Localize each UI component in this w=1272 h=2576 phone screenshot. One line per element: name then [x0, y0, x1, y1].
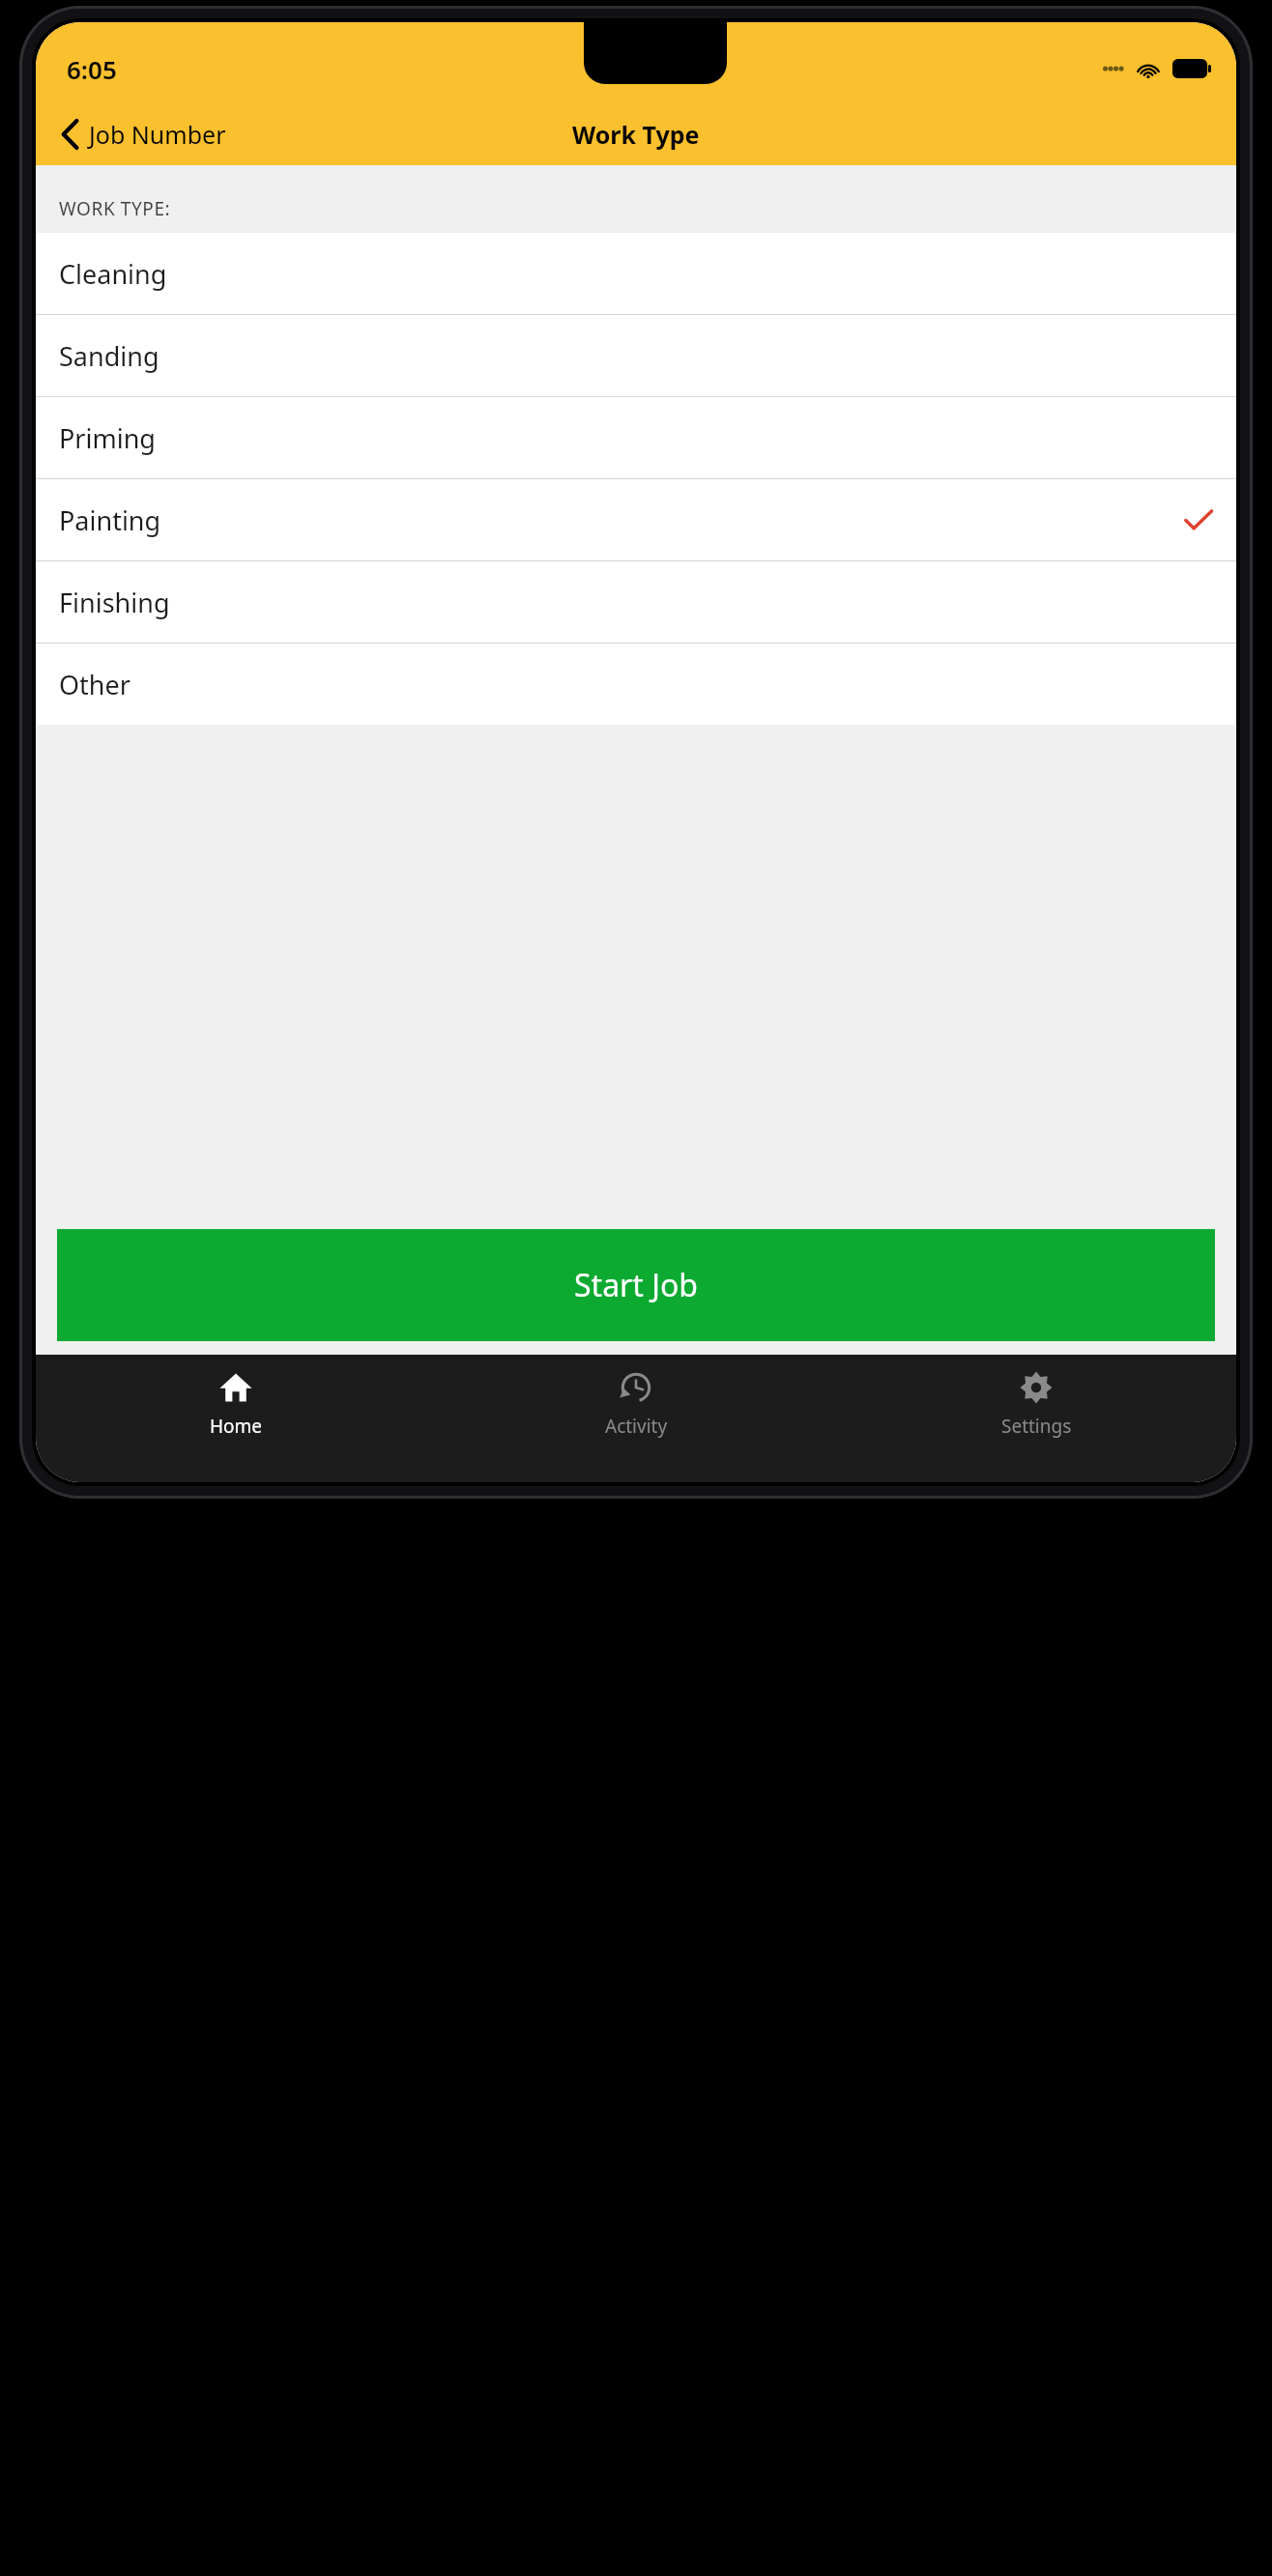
- staticText: Other: [59, 667, 130, 702]
- staticText: Start Job: [574, 1264, 698, 1306]
- button[interactable]: Settings: [836, 1355, 1236, 1482]
- button[interactable]: Activity: [436, 1355, 836, 1482]
- staticText: Sanding: [59, 338, 159, 374]
- button[interactable]: Start Job: [57, 1229, 1215, 1341]
- staticText: Cleaning: [59, 256, 167, 292]
- staticText: Work Type: [572, 118, 700, 151]
- other: Back: [61, 119, 80, 150]
- staticText: Activity: [605, 1414, 668, 1439]
- button[interactable]: Other: [36, 644, 1236, 725]
- button[interactable]: Home: [36, 1355, 436, 1482]
- button[interactable]: Priming: [36, 397, 1236, 478]
- button[interactable]: Cleaning: [36, 233, 1236, 314]
- staticText: Settings: [1001, 1414, 1072, 1439]
- button[interactable]: Back: [57, 112, 230, 157]
- staticText: Priming: [59, 420, 156, 456]
- button[interactable]: Painting: [36, 479, 1236, 560]
- button[interactable]: Sanding: [36, 315, 1236, 396]
- staticText: Finishing: [59, 585, 170, 620]
- staticText: Home: [210, 1414, 263, 1439]
- other: Activity: [619, 1370, 653, 1405]
- staticText: Painting: [59, 502, 161, 538]
- other: Home: [218, 1370, 253, 1405]
- other: Settings: [1019, 1370, 1054, 1405]
- staticText: 6:05: [67, 52, 117, 86]
- staticText: WORK TYPE:: [59, 196, 171, 221]
- button[interactable]: Finishing: [36, 561, 1236, 643]
- staticText: Job Number: [89, 118, 226, 151]
